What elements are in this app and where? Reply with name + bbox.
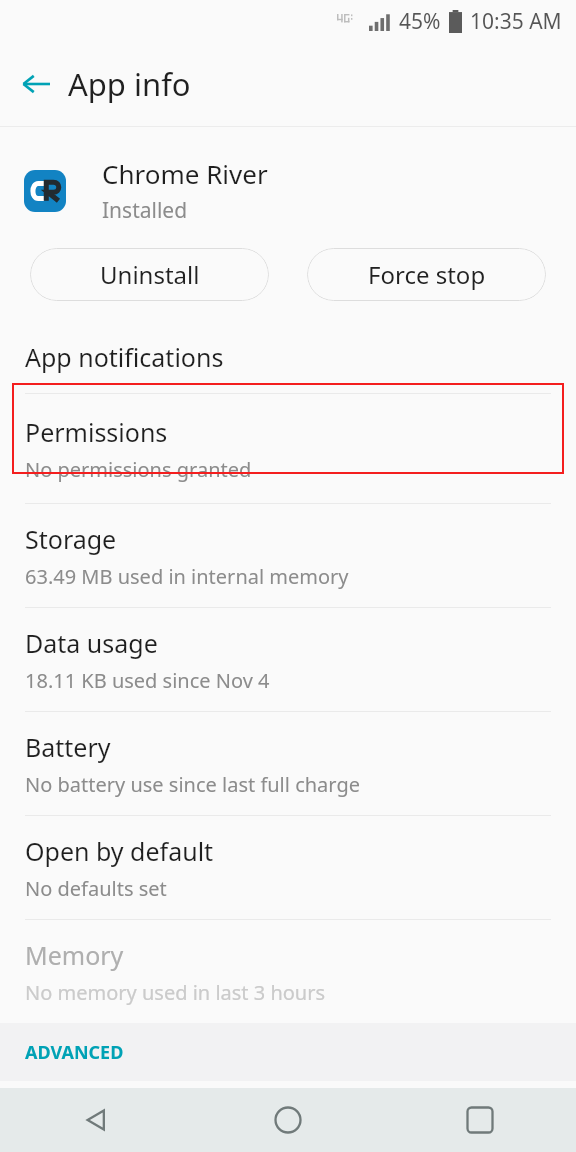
staticText: Open by default [25, 834, 214, 868]
button[interactable]: Data usage [0, 608, 576, 711]
staticText: No defaults set [25, 875, 167, 902]
button[interactable]: Back [8, 56, 64, 112]
button[interactable]: Back [0, 1088, 192, 1152]
staticText: Data usage [25, 626, 158, 660]
button[interactable]: Battery [0, 712, 576, 815]
staticText: Permissions [25, 415, 168, 449]
button[interactable]: Open by default [0, 816, 576, 919]
staticText: 10:35 AM [470, 7, 562, 36]
staticText: 18.11 KB used since Nov 4 [25, 667, 270, 694]
staticText: Force stop [368, 258, 486, 291]
button[interactable]: Force stop [307, 248, 546, 301]
button[interactable]: Uninstall [30, 248, 269, 301]
button[interactable]: Recent apps [384, 1088, 576, 1152]
button[interactable] [12, 383, 564, 474]
staticText: Chrome River [102, 156, 268, 191]
button[interactable]: Storage [0, 504, 576, 607]
button[interactable]: Permissions [0, 394, 576, 503]
button[interactable]: Draw over other apps [0, 1081, 576, 1117]
staticText: Memory [25, 938, 124, 972]
staticText: App notifications [25, 340, 224, 374]
staticText: Battery [25, 730, 111, 764]
staticText: No memory used in last 3 hours [25, 979, 326, 1006]
staticText: 45% [399, 7, 441, 36]
staticText: No battery use since last full charge [25, 771, 360, 798]
staticText: Storage [25, 522, 117, 556]
staticText: 63.49 MB used in internal memory [25, 563, 349, 590]
button[interactable]: Home [192, 1088, 384, 1152]
staticText: ADVANCED [25, 1040, 124, 1065]
button[interactable]: Memory [0, 920, 576, 1023]
staticText: No permissions granted [25, 456, 252, 483]
staticText: Draw over other apps [25, 1103, 279, 1137]
staticText: Installed [102, 196, 188, 225]
staticText: Uninstall [100, 258, 200, 291]
staticText: App info [68, 63, 191, 105]
button[interactable]: App notifications [0, 320, 576, 393]
button[interactable]: ADVANCED [0, 1023, 576, 1081]
